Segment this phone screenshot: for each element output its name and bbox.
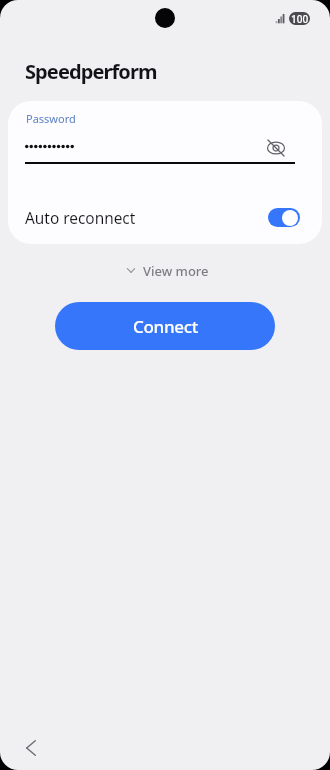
button[interactable]: Auto reconnect	[268, 208, 300, 227]
staticText: Auto reconnect	[25, 208, 136, 229]
button[interactable]: Connect	[55, 302, 275, 350]
staticText: 100	[291, 12, 309, 25]
button[interactable]: Show password	[260, 132, 292, 164]
staticText: Password	[26, 111, 76, 126]
staticText: View more	[143, 262, 209, 280]
staticText: Connect	[133, 315, 198, 338]
button[interactable]: Back	[15, 732, 46, 763]
button[interactable]: View more	[120, 258, 212, 282]
staticText: Speedperform	[25, 58, 157, 85]
